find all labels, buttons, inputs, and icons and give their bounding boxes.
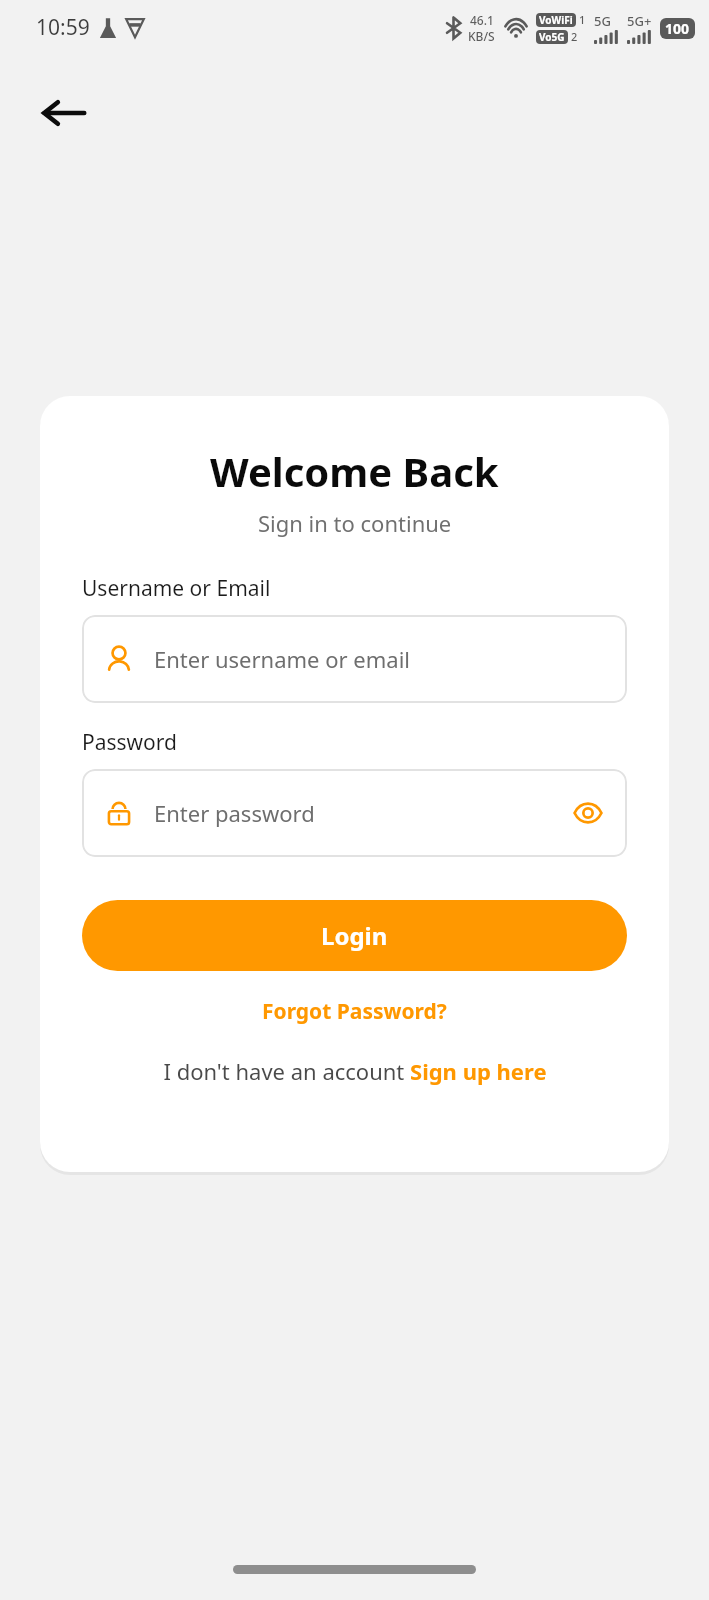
staticText: 10:59 bbox=[36, 13, 90, 42]
button[interactable]: Forgot Password? bbox=[252, 991, 457, 1032]
button[interactable]: Enter username or email bbox=[82, 615, 627, 703]
button[interactable]: Back bbox=[26, 84, 102, 142]
staticText: 5G bbox=[594, 12, 611, 30]
staticText: 2 bbox=[571, 29, 578, 44]
staticText: Password bbox=[82, 728, 177, 757]
staticText: 5G+ bbox=[627, 12, 652, 30]
staticText: 1 bbox=[579, 12, 586, 27]
button[interactable]: I don't have an account Sign up here bbox=[155, 1050, 555, 1092]
staticText: Enter username or email bbox=[154, 644, 411, 674]
staticText: Forgot Password? bbox=[262, 997, 447, 1026]
staticText: Login bbox=[321, 919, 388, 952]
button[interactable]: Login bbox=[82, 900, 627, 971]
staticText: Username or Email bbox=[82, 574, 271, 603]
button[interactable]: Show password bbox=[569, 794, 607, 832]
staticText: 100 bbox=[665, 19, 690, 38]
staticText: Vo5G bbox=[539, 30, 565, 44]
staticText: KB/S bbox=[468, 28, 495, 44]
staticText: VoWiFi bbox=[539, 13, 573, 27]
staticText: 46.1 bbox=[470, 12, 494, 28]
staticText: Welcome Back bbox=[210, 444, 499, 498]
staticText: Enter password bbox=[154, 798, 315, 828]
button[interactable]: Enter password bbox=[82, 769, 627, 857]
staticText: Sign in to continue bbox=[258, 508, 452, 538]
staticText: I don't have an account Sign up here bbox=[163, 1056, 547, 1086]
